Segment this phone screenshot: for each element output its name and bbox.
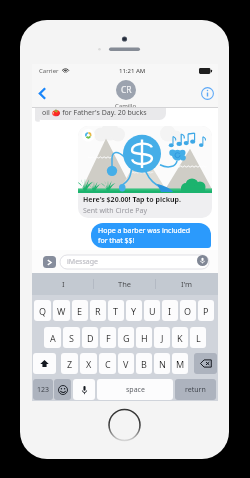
other: Shift [40, 359, 49, 368]
button[interactable]: Dictate [73, 379, 95, 400]
button[interactable]: L [190, 327, 206, 348]
button[interactable]: U [144, 300, 160, 321]
button[interactable]: space [97, 379, 173, 400]
button[interactable]: Hope a barber was included [91, 223, 211, 248]
button[interactable]: Z [61, 353, 78, 374]
staticText: E [77, 305, 83, 317]
staticText: Sent with Circle Pay [83, 206, 148, 216]
button[interactable]: I [32, 273, 94, 295]
staticText: B [141, 358, 147, 370]
staticText: 11:21 AM [119, 67, 146, 75]
staticText: Y [131, 305, 137, 317]
button[interactable]: Back [32, 78, 53, 108]
staticText: N [159, 358, 166, 370]
button[interactable]: V [118, 353, 134, 374]
staticText: J [161, 332, 164, 344]
button[interactable]: C [99, 353, 116, 374]
button[interactable]: A [44, 327, 61, 348]
button[interactable]: F [100, 327, 116, 348]
staticText: D [87, 332, 94, 344]
button[interactable]: I [162, 300, 178, 321]
button[interactable]: iMessage [60, 255, 209, 269]
staticText: K [177, 332, 183, 344]
button[interactable]: Q [34, 300, 51, 321]
staticText: oil 🍅 for Father's Day. 20 bucks [42, 108, 147, 118]
button[interactable]: Shift [33, 353, 56, 374]
button[interactable]: Emoji [54, 379, 71, 400]
staticText: V [123, 358, 129, 370]
button[interactable]: W [53, 300, 70, 321]
button[interactable]: P [198, 300, 214, 321]
staticText: U [149, 305, 156, 317]
staticText: 123 [37, 385, 50, 395]
staticText: Z [67, 358, 73, 370]
button[interactable]: The [94, 273, 156, 295]
button[interactable]: H [136, 327, 152, 348]
button[interactable]: M [172, 353, 188, 374]
staticText: Here's $20.00! Tap to pickup. [83, 195, 181, 205]
staticText: I [62, 279, 65, 289]
staticText: A [50, 332, 56, 344]
other: Dictate [81, 385, 88, 395]
button[interactable]: Details [196, 78, 218, 108]
button[interactable]: Here's $20.00! Tap to pickup. [78, 126, 212, 218]
button[interactable]: S [63, 327, 80, 348]
button[interactable]: N [154, 353, 170, 374]
staticText: for that $$! [98, 236, 135, 246]
button[interactable]: E [72, 300, 88, 321]
staticText: F [106, 332, 111, 344]
staticText: I [168, 305, 172, 317]
staticText: M [176, 358, 185, 370]
button[interactable]: 123 [33, 379, 53, 400]
staticText: H [141, 332, 148, 344]
staticText: T [113, 305, 119, 317]
button[interactable]: return [175, 379, 216, 400]
staticText: O [184, 305, 192, 317]
staticText: R [95, 305, 101, 317]
button[interactable]: T [108, 300, 124, 321]
staticText: G [123, 332, 130, 344]
button[interactable]: G [118, 327, 134, 348]
staticText: Carrier [39, 67, 59, 75]
staticText: S [69, 332, 74, 344]
staticText: The [118, 279, 132, 289]
button[interactable]: Y [126, 300, 142, 321]
button[interactable]: X [80, 353, 97, 374]
button[interactable]: B [136, 353, 152, 374]
staticText: space [126, 385, 145, 395]
staticText: Camillo [115, 102, 137, 110]
staticText: W [57, 305, 66, 317]
staticText: iMessage [67, 257, 98, 267]
other: Delete [200, 359, 212, 368]
button[interactable]: App drawer [43, 256, 56, 268]
button[interactable]: Delete [194, 353, 217, 374]
staticText: Hope a barber was included [98, 226, 191, 236]
button[interactable]: R [90, 300, 106, 321]
staticText: I'm [181, 279, 193, 289]
staticText: C [105, 358, 111, 370]
button[interactable]: K [172, 327, 188, 348]
button[interactable]: CR [115, 80, 137, 110]
staticText: P [203, 305, 209, 317]
staticText: X [86, 358, 92, 370]
button[interactable]: D [82, 327, 98, 348]
staticText: CR [121, 84, 132, 96]
button[interactable]: O [180, 300, 196, 321]
button[interactable]: Record audio [197, 255, 208, 266]
button[interactable]: I'm [156, 273, 218, 295]
button[interactable]: J [154, 327, 170, 348]
staticText: L [196, 332, 201, 344]
staticText: Q [39, 305, 47, 317]
other: Emoji [58, 385, 68, 395]
staticText: return [185, 385, 206, 395]
